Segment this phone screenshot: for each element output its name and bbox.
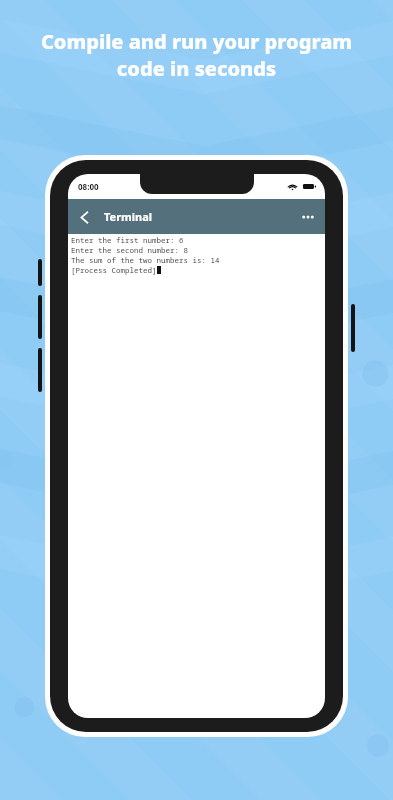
staticText: 08:00 xyxy=(78,181,99,192)
staticText: Compile and run your program code in sec… xyxy=(18,28,375,82)
button[interactable]: Back xyxy=(68,201,100,233)
staticText: The sum of the two numbers is: 14 xyxy=(71,255,220,265)
staticText: Enter the second number: 8 xyxy=(71,245,188,255)
staticText: Enter the first number: 6 xyxy=(71,235,184,245)
staticText: [Process Completed] xyxy=(71,265,157,275)
staticText: Terminal xyxy=(104,209,153,224)
button[interactable]: More options xyxy=(291,200,325,234)
